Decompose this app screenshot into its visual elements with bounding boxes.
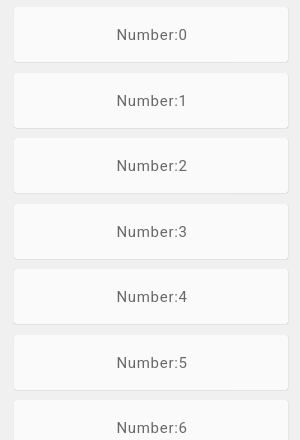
staticText: Number:7 <box>0 0 72 18</box>
button[interactable]: Number:1 <box>14 73 288 128</box>
staticText: Number:1 <box>116 92 188 110</box>
staticText: Number:8 <box>0 0 72 18</box>
button[interactable]: Number:5 <box>14 335 288 390</box>
button[interactable]: Number:2 <box>14 138 288 193</box>
staticText: Number:4 <box>116 288 188 306</box>
staticText: Number:2 <box>116 157 188 175</box>
button[interactable]: Number:0 <box>14 7 288 62</box>
staticText: Number:6 <box>116 419 188 437</box>
button[interactable]: Number:7 <box>0 0 274 55</box>
button[interactable]: Number:6 <box>14 400 288 440</box>
button[interactable]: Number:4 <box>14 269 288 324</box>
button[interactable]: Number:8 <box>0 0 274 55</box>
staticText: Number:0 <box>116 26 188 44</box>
button[interactable]: Number:3 <box>14 204 288 259</box>
staticText: Number:5 <box>116 354 188 372</box>
staticText: Number:3 <box>116 223 188 241</box>
